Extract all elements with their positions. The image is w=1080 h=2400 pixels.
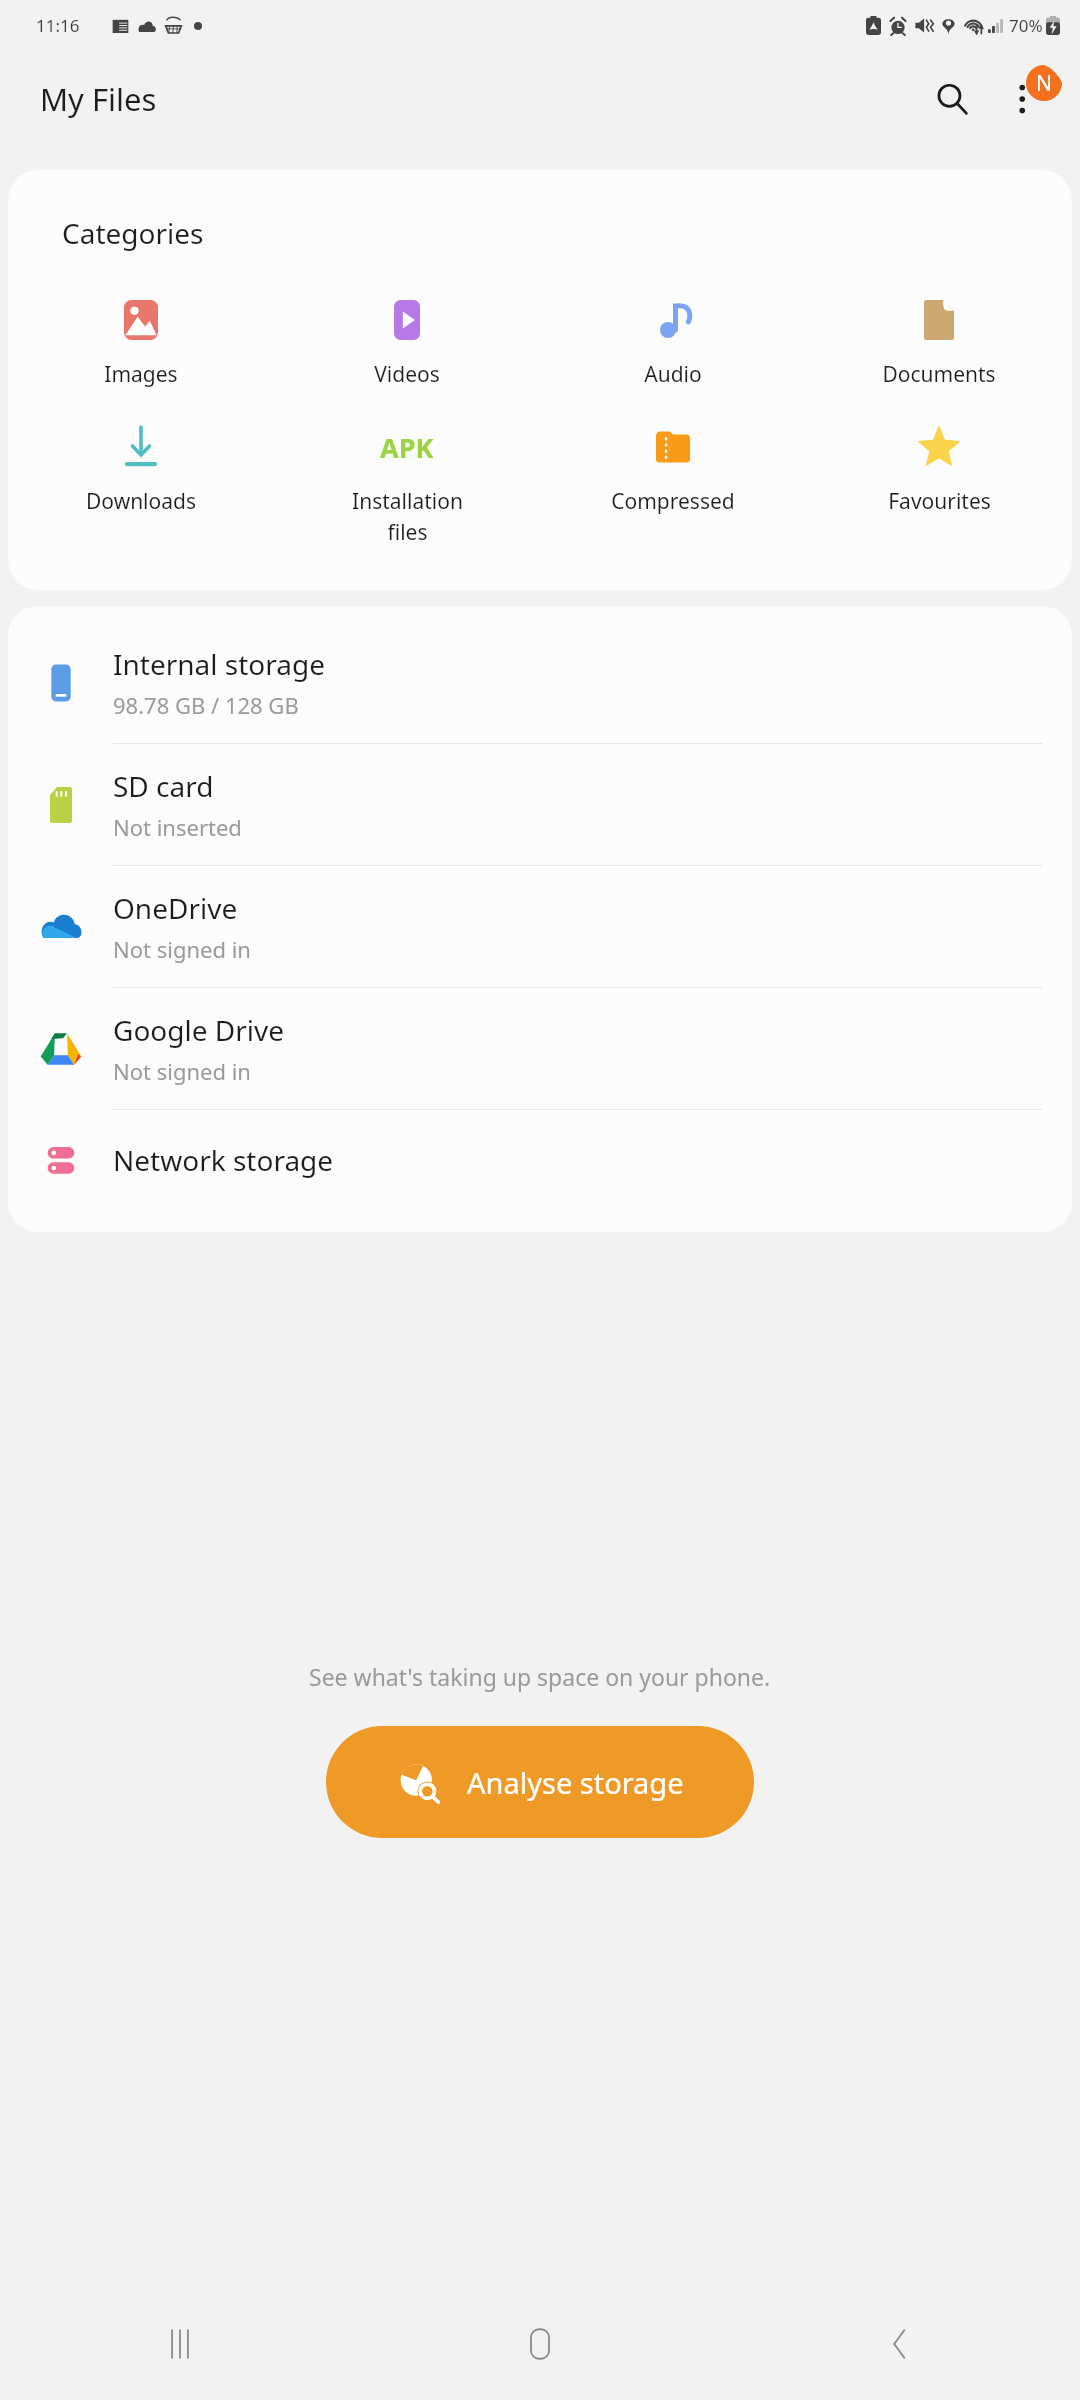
button[interactable]: Back bbox=[720, 2288, 1080, 2400]
button[interactable]: APK bbox=[274, 415, 540, 550]
button[interactable]: Google Drive bbox=[8, 988, 1072, 1109]
button[interactable]: OneDrive bbox=[8, 866, 1072, 987]
staticText: Videos bbox=[374, 360, 440, 389]
button[interactable]: Documents bbox=[806, 288, 1072, 393]
button[interactable]: Downloads bbox=[8, 415, 274, 520]
staticText: 11:16 bbox=[36, 14, 80, 37]
staticText: Downloads bbox=[86, 487, 196, 516]
staticText: N bbox=[1036, 69, 1052, 98]
staticText: Images bbox=[104, 360, 178, 389]
button[interactable]: Favourites bbox=[806, 415, 1072, 520]
button[interactable]: Search bbox=[914, 61, 990, 137]
staticText: 98.78 GB / 128 GB bbox=[113, 690, 299, 720]
staticText: 70% bbox=[1009, 14, 1043, 37]
staticText: Compressed bbox=[611, 487, 735, 516]
staticText: OneDrive bbox=[113, 889, 238, 927]
staticText: Google Drive bbox=[113, 1011, 285, 1049]
staticText: Not inserted bbox=[113, 812, 242, 842]
staticText: My Files bbox=[40, 78, 157, 120]
button[interactable]: Analyse storage bbox=[326, 1726, 754, 1838]
button[interactable]: Videos bbox=[274, 288, 540, 393]
button[interactable]: Audio bbox=[540, 288, 806, 393]
staticText: Audio bbox=[644, 360, 702, 389]
button[interactable]: Images bbox=[8, 288, 274, 393]
button[interactable]: SD card bbox=[8, 744, 1072, 865]
staticText: See what's taking up space on your phone… bbox=[309, 1661, 771, 1692]
staticText: Documents bbox=[882, 360, 996, 389]
staticText: Network storage bbox=[113, 1141, 334, 1179]
staticText: Not signed in bbox=[113, 1056, 251, 1086]
staticText: Internal storage bbox=[113, 645, 325, 683]
staticText: Not signed in bbox=[113, 934, 251, 964]
staticText: SD card bbox=[113, 767, 214, 805]
button[interactable]: More options bbox=[990, 61, 1066, 137]
button[interactable]: Internal storage bbox=[8, 622, 1072, 743]
button[interactable]: Compressed bbox=[540, 415, 806, 520]
staticText: Installation files bbox=[352, 487, 463, 546]
staticText: Categories bbox=[62, 214, 204, 252]
staticText: Analyse storage bbox=[467, 1763, 684, 1802]
button[interactable]: Network storage bbox=[8, 1110, 1072, 1210]
button[interactable]: Home bbox=[360, 2288, 720, 2400]
button[interactable]: Recents bbox=[0, 2288, 360, 2400]
staticText: APK bbox=[380, 429, 434, 466]
staticText: Favourites bbox=[888, 487, 991, 516]
